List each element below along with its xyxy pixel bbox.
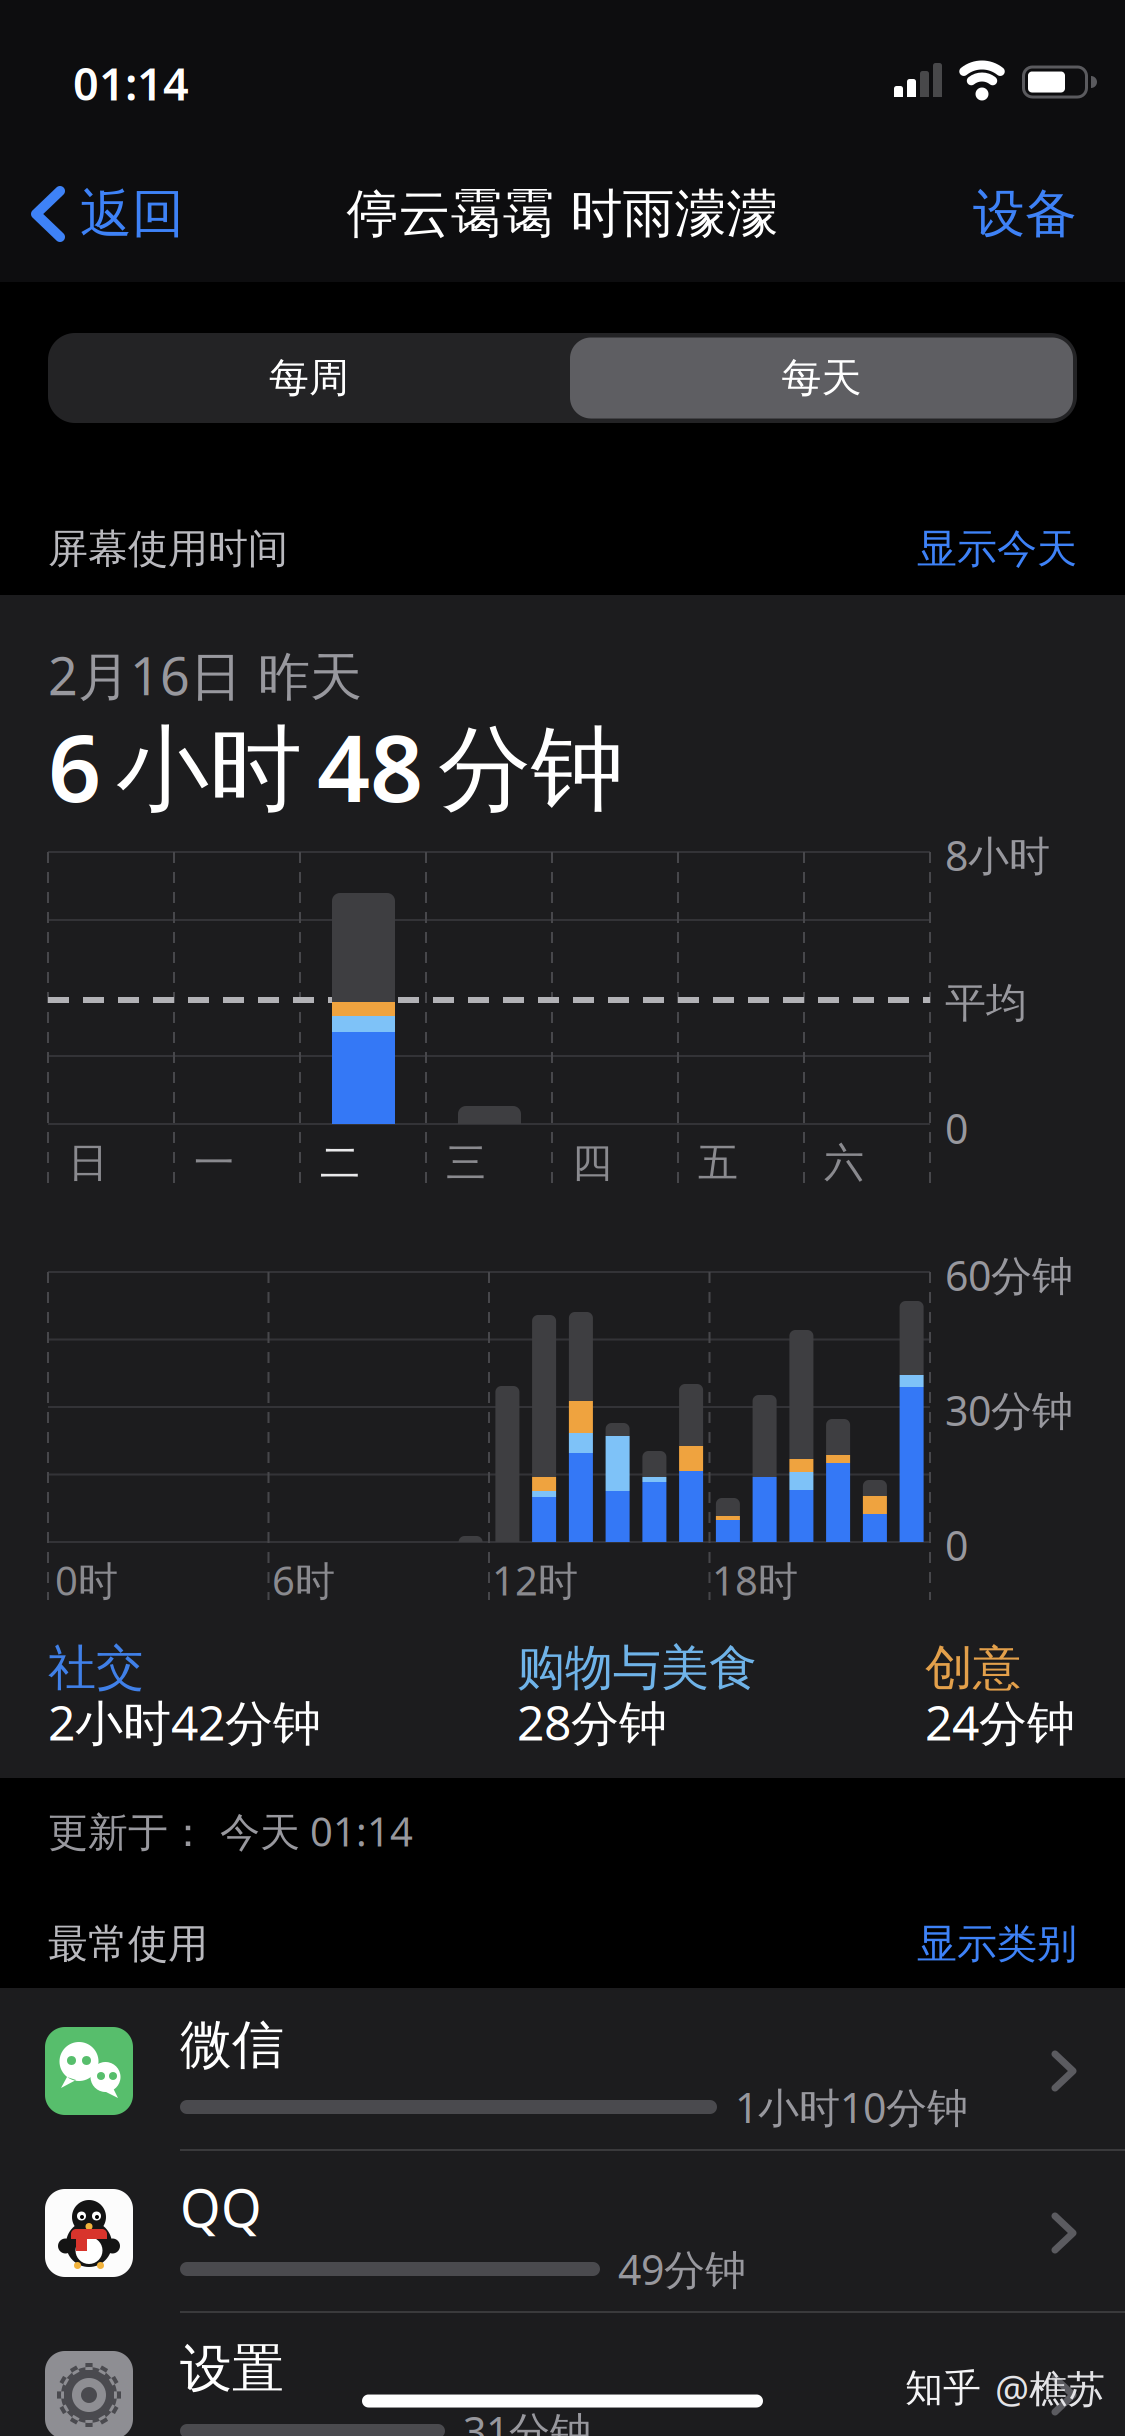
button[interactable]: 显示今天 (817, 517, 1077, 581)
staticText: QQ (180, 2172, 262, 2242)
staticText: 0 (945, 1517, 968, 1573)
staticText: 01:14 (73, 52, 189, 114)
staticText: 设置 (180, 2336, 284, 2402)
staticText: 平均 (945, 977, 1027, 1029)
staticText: @樵苏 (995, 2362, 1105, 2414)
staticText: 知乎 (905, 2364, 981, 2412)
staticText: 30分钟 (945, 1382, 1073, 1438)
button[interactable]: 返回 (30, 169, 250, 259)
staticText: 12时 (492, 1553, 578, 1607)
staticText: 28分钟 (517, 1689, 667, 1755)
staticText: 6 小时 48 分钟 (48, 703, 624, 829)
button[interactable]: 微信 (0, 1988, 1125, 2149)
button[interactable]: 设置 (0, 2312, 1125, 2436)
staticText: 屏幕使用时间 (48, 524, 288, 574)
button[interactable]: QQ (0, 2150, 1125, 2311)
staticText: 返回 (80, 181, 184, 247)
staticText: 0时 (55, 1553, 118, 1607)
staticText: 2小时42分钟 (48, 1689, 321, 1755)
staticText: 2月16日 昨天 (48, 640, 362, 710)
button[interactable]: 显示类别 (817, 1912, 1077, 1976)
staticText: 日 (68, 1138, 108, 1188)
staticText: 49分钟 (618, 2241, 746, 2297)
staticText: 31分钟 (463, 2403, 591, 2436)
staticText: 六 (824, 1138, 864, 1188)
button[interactable]: 每天 (570, 337, 1073, 418)
staticText: 24分钟 (925, 1689, 1075, 1755)
staticText: 60分钟 (945, 1247, 1073, 1303)
staticText: 二 (320, 1138, 360, 1188)
staticText: 一 (194, 1138, 234, 1188)
staticText: 三 (446, 1138, 486, 1188)
staticText: 停云霭霭 时雨濛濛 (346, 181, 778, 247)
staticText: 18时 (712, 1553, 798, 1607)
staticText: 显示类别 (917, 1919, 1077, 1969)
staticText: 购物与美食 (517, 1638, 757, 1698)
staticText: 四 (572, 1138, 612, 1188)
staticText: 创意 (925, 1638, 1021, 1698)
staticText: 五 (698, 1138, 738, 1188)
staticText: 8小时 (945, 827, 1050, 883)
staticText: 更新于： 今天 01:14 (48, 1804, 413, 1858)
staticText: 每天 (781, 353, 861, 403)
staticText: 社交 (48, 1638, 144, 1698)
staticText: 1小时10分钟 (735, 2079, 968, 2135)
staticText: 6时 (272, 1553, 335, 1607)
staticText: 0 (945, 1100, 968, 1156)
staticText: 设备 (973, 181, 1077, 247)
staticText: 微信 (180, 2012, 284, 2078)
staticText: 显示今天 (917, 524, 1077, 574)
staticText: 每周 (269, 353, 349, 403)
button[interactable]: 设备 (917, 169, 1077, 259)
button[interactable]: 每周 (54, 333, 564, 423)
staticText: 最常使用 (48, 1919, 208, 1969)
